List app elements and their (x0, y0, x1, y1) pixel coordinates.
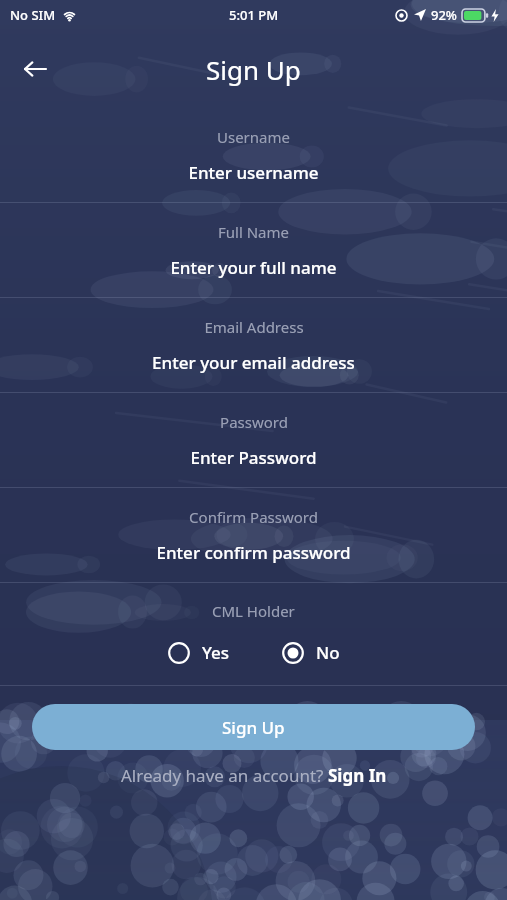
staticText: 92% (431, 6, 457, 24)
staticText: Confirm Password (189, 507, 318, 527)
button[interactable]: Sign Up (32, 704, 475, 750)
staticText: Full Name (218, 222, 289, 242)
staticText: Enter Password (190, 446, 317, 469)
staticText: Enter your email address (152, 351, 355, 374)
staticText: CML Holder (212, 601, 295, 621)
button[interactable]: Already have an account? (0, 764, 507, 787)
staticText: Yes (202, 641, 230, 664)
button[interactable]: Back (12, 46, 58, 92)
button[interactable]: Username (0, 108, 507, 202)
button[interactable]: Password (0, 393, 507, 487)
button[interactable]: Confirm Password (0, 488, 507, 582)
button[interactable]: Email Address (0, 298, 507, 392)
staticText: Email Address (204, 317, 304, 337)
staticText: Sign Up (206, 52, 301, 87)
staticText: Password (220, 412, 288, 432)
staticText: Sign Up (222, 716, 285, 739)
staticText: Username (217, 127, 290, 147)
staticText: Sign In (328, 764, 387, 787)
staticText: Enter username (188, 161, 319, 184)
button[interactable]: Yes (164, 637, 234, 668)
staticText: No (316, 641, 340, 664)
staticText: Already have an account? (121, 764, 328, 787)
button[interactable]: Full Name (0, 203, 507, 297)
staticText: Enter confirm password (156, 541, 351, 564)
staticText: Enter your full name (170, 256, 337, 279)
staticText: 5:01 PM (229, 6, 279, 24)
button[interactable]: No (278, 637, 344, 668)
staticText: No SIM (10, 6, 56, 24)
